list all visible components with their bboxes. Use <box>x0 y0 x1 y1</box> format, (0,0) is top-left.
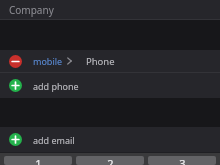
staticText: mobile <box>33 55 63 67</box>
staticText: Company <box>9 3 54 17</box>
button[interactable]: 1 <box>4 156 72 165</box>
staticText: 2 <box>107 156 114 165</box>
button[interactable]: Remove phone <box>0 50 220 72</box>
staticText: 3 <box>179 156 186 165</box>
button[interactable]: 3 <box>148 156 216 165</box>
button[interactable]: 2 <box>76 156 144 165</box>
button[interactable]: add phone <box>0 73 220 98</box>
staticText: Phone <box>86 55 115 68</box>
staticText: 1 <box>35 156 42 165</box>
button[interactable]: Company <box>0 0 220 19</box>
button[interactable]: mobile <box>33 55 72 67</box>
staticText: add phone <box>33 80 79 92</box>
button[interactable]: add email <box>0 127 220 152</box>
staticText: add email <box>33 134 75 146</box>
button[interactable]: Remove phone <box>9 55 22 68</box>
